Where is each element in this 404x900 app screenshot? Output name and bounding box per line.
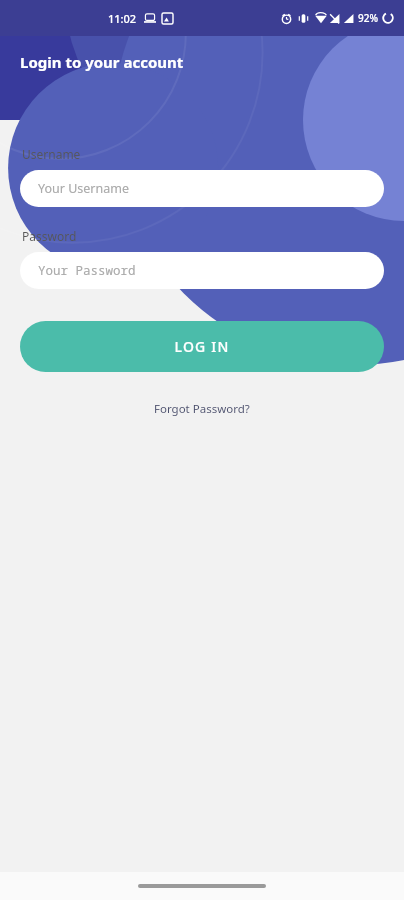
staticText: Your Password: [38, 262, 136, 279]
staticText: 92%: [358, 11, 378, 25]
staticText: Password: [22, 228, 77, 244]
button[interactable]: Your Username: [20, 170, 384, 207]
button[interactable]: Forgot Password?: [146, 397, 258, 421]
staticText: 11:02: [108, 11, 137, 26]
staticText: Login to your account: [20, 52, 184, 72]
staticText: Your Username: [38, 180, 129, 197]
button[interactable]: Your Password: [20, 252, 384, 289]
button[interactable]: LOG IN: [20, 321, 384, 372]
staticText: Forgot Password?: [154, 401, 250, 417]
staticText: Username: [22, 146, 81, 162]
staticText: LOG IN: [174, 337, 230, 356]
